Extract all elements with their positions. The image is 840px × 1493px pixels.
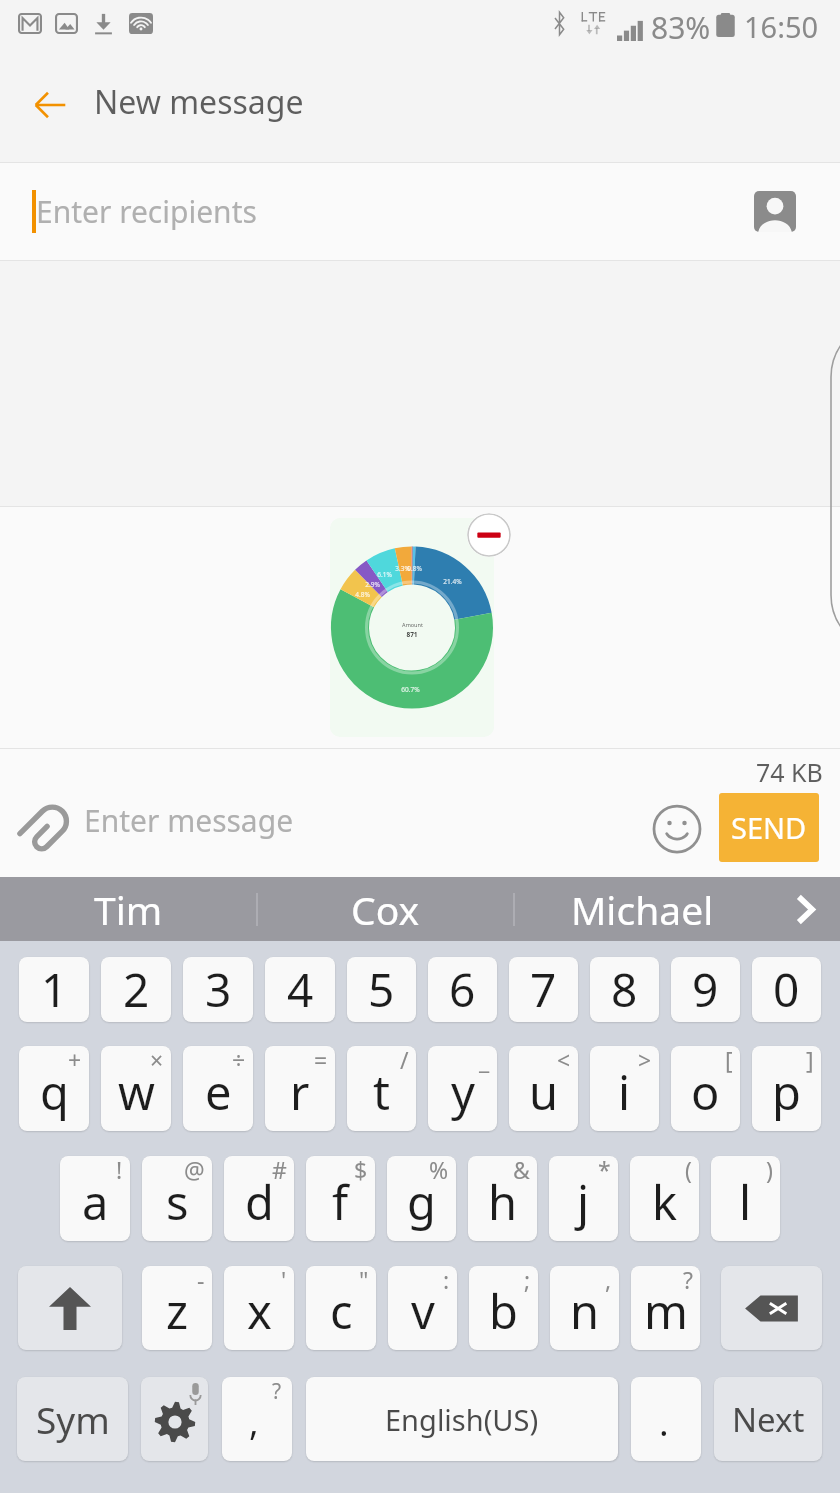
button[interactable]: 2 xyxy=(101,957,171,1022)
button[interactable]: h xyxy=(468,1156,537,1241)
button[interactable]: t xyxy=(347,1046,416,1131)
button[interactable]: j xyxy=(549,1156,618,1241)
button[interactable]: f xyxy=(306,1156,375,1241)
button[interactable]: Tim xyxy=(0,877,256,941)
button[interactable]: 0 xyxy=(752,957,821,1022)
staticText: ? xyxy=(683,1266,693,1295)
button[interactable]: y xyxy=(428,1046,497,1131)
button[interactable]: Backspace xyxy=(721,1266,822,1350)
button[interactable]: b xyxy=(469,1266,538,1350)
staticText: . xyxy=(659,1398,669,1447)
button[interactable]: w xyxy=(101,1046,171,1131)
staticText: p xyxy=(772,1060,801,1124)
staticText: Cox xyxy=(351,883,420,936)
staticText: Michael xyxy=(571,883,714,936)
button[interactable]: Settings xyxy=(141,1377,208,1461)
staticText: $ xyxy=(354,1156,368,1185)
staticText: ' xyxy=(281,1266,287,1295)
button[interactable]: q xyxy=(19,1046,89,1131)
button[interactable]: g xyxy=(387,1156,456,1241)
button[interactable]: n xyxy=(550,1266,619,1350)
staticText: Enter message xyxy=(84,800,294,841)
staticText: ( xyxy=(685,1156,692,1185)
staticText: j xyxy=(577,1170,590,1234)
button[interactable]: d xyxy=(224,1156,294,1241)
button[interactable]: p xyxy=(752,1046,821,1131)
staticText: Amount xyxy=(402,621,423,628)
button[interactable]: 4 xyxy=(265,957,335,1022)
button[interactable]: c xyxy=(306,1266,376,1350)
staticText: : xyxy=(443,1266,450,1295)
staticText: 5 xyxy=(368,958,395,1021)
staticText: Next xyxy=(732,1397,805,1442)
staticText: v xyxy=(411,1279,435,1343)
button[interactable]: l xyxy=(711,1156,780,1241)
button[interactable]: s xyxy=(142,1156,212,1241)
staticText: n xyxy=(570,1279,600,1343)
staticText: / xyxy=(400,1046,409,1075)
staticText: English(US) xyxy=(385,1400,539,1439)
staticText: New message xyxy=(94,80,304,124)
staticText: 9 xyxy=(692,958,719,1021)
staticText: % xyxy=(429,1156,449,1185)
button[interactable]: e xyxy=(183,1046,253,1131)
button[interactable] xyxy=(330,518,494,737)
button[interactable]: English(US) xyxy=(306,1377,618,1461)
staticText: 2 xyxy=(123,958,150,1021)
staticText: o xyxy=(691,1060,720,1124)
staticText: d xyxy=(245,1170,274,1234)
button[interactable]: . xyxy=(631,1377,701,1461)
button[interactable]: z xyxy=(142,1266,212,1350)
button[interactable]: Next xyxy=(714,1377,822,1461)
staticText: Enter recipients xyxy=(36,191,257,232)
button[interactable]: k xyxy=(630,1156,699,1241)
staticText: 0.8% xyxy=(407,564,422,573)
staticText: @ xyxy=(184,1156,205,1185)
button[interactable]: 3 xyxy=(183,957,253,1022)
staticText: l xyxy=(739,1170,752,1234)
button[interactable]: i xyxy=(590,1046,659,1131)
button[interactable]: Remove attachment xyxy=(467,513,511,557)
button[interactable]: Emoji xyxy=(645,797,708,860)
button[interactable]: Sym xyxy=(17,1377,128,1461)
button[interactable]: 5 xyxy=(347,957,416,1022)
button[interactable]: v xyxy=(388,1266,457,1350)
button[interactable]: Back xyxy=(0,56,99,162)
button[interactable]: x xyxy=(224,1266,294,1350)
button[interactable]: r xyxy=(265,1046,335,1131)
staticText: 6.1% xyxy=(377,570,392,579)
button[interactable]: Michael xyxy=(515,877,770,941)
button[interactable]: a xyxy=(60,1156,130,1241)
button[interactable]: 1 xyxy=(19,957,89,1022)
button[interactable]: 6 xyxy=(428,957,497,1022)
staticText: 60.7% xyxy=(401,685,420,694)
button[interactable]: Cox xyxy=(258,877,513,941)
staticText: b xyxy=(489,1279,518,1343)
staticText: = xyxy=(314,1046,328,1075)
button[interactable]: Add contact xyxy=(732,163,818,260)
staticText: 2.9% xyxy=(365,580,380,589)
staticText: 8 xyxy=(611,958,638,1021)
staticText: y xyxy=(451,1060,475,1124)
staticText: * xyxy=(598,1156,611,1185)
button[interactable]: SEND xyxy=(719,793,819,862)
staticText: s xyxy=(166,1170,189,1234)
staticText: i xyxy=(618,1060,631,1124)
button[interactable]: 9 xyxy=(671,957,740,1022)
button[interactable]: More suggestions xyxy=(770,877,840,941)
button[interactable]: m xyxy=(631,1266,700,1350)
button[interactable]: u xyxy=(509,1046,578,1131)
staticText: z xyxy=(166,1279,189,1343)
staticText: [ xyxy=(725,1046,733,1075)
button[interactable]: Attach xyxy=(8,793,80,865)
staticText: 871 xyxy=(406,630,418,639)
button[interactable]: , xyxy=(222,1377,292,1461)
button[interactable]: Shift xyxy=(18,1266,122,1350)
button[interactable]: 8 xyxy=(590,957,659,1022)
staticText: 3.3% xyxy=(395,564,410,573)
staticText: 4 xyxy=(287,958,314,1021)
staticText: m xyxy=(644,1279,688,1343)
button[interactable]: o xyxy=(671,1046,740,1131)
button[interactable]: 7 xyxy=(509,957,578,1022)
staticText: u xyxy=(529,1060,559,1124)
